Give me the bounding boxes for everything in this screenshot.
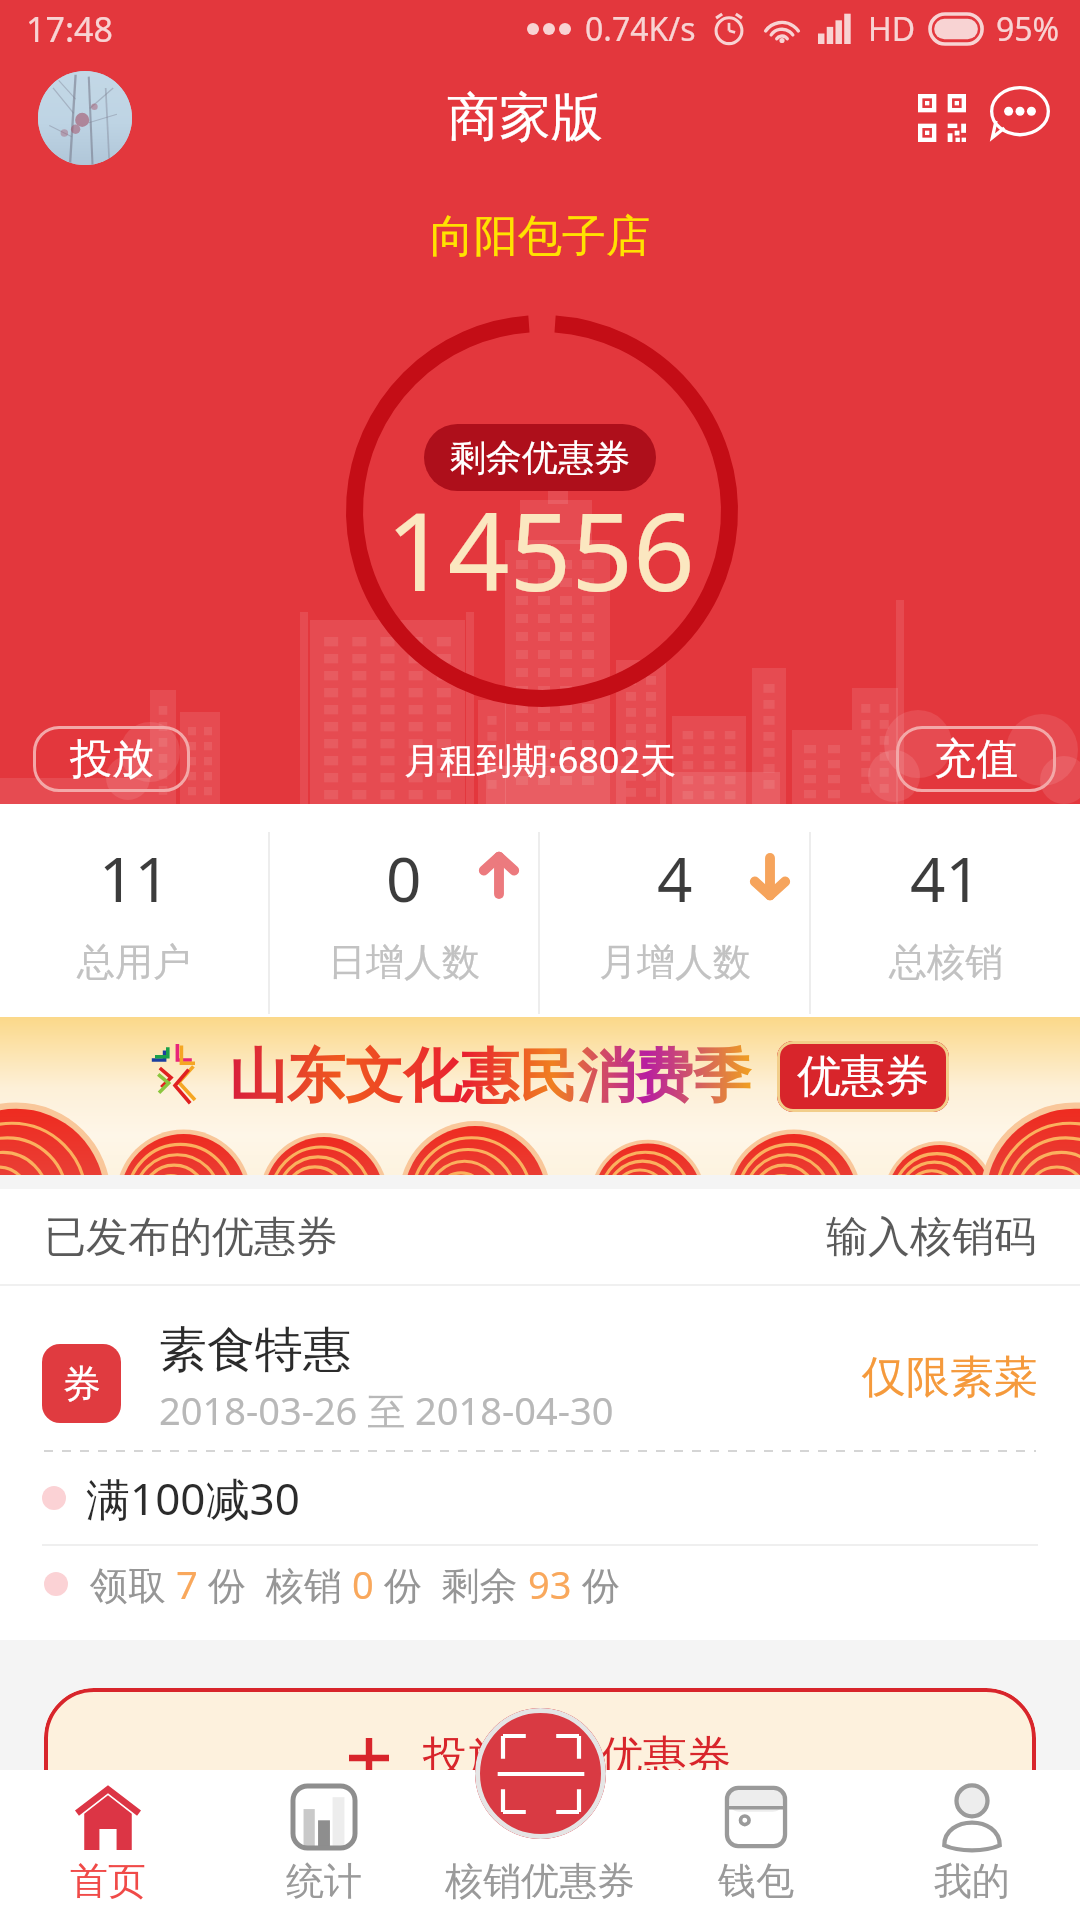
staticText: 已发布的优惠券 <box>44 1211 338 1264</box>
staticText: 投放 <box>70 733 154 786</box>
staticText: 17:48 <box>26 6 113 52</box>
staticText: 4 <box>657 836 693 920</box>
button[interactable]: 投放 <box>33 726 190 792</box>
staticText: 投放新的优惠券 <box>423 1730 731 1785</box>
staticText: HD <box>868 7 916 51</box>
button[interactable]: Home <box>0 1770 216 1920</box>
staticText: 2018-03-26 至 2018-04-30 <box>159 1384 614 1436</box>
staticText: 份 核销 <box>198 1558 352 1610</box>
staticText: 95% <box>996 7 1060 51</box>
button[interactable]: 41 <box>811 804 1080 1017</box>
staticText: 统计 <box>286 1857 362 1905</box>
button[interactable]: 投放新的优惠券 <box>44 1688 1036 1838</box>
button[interactable]: 核销优惠券 <box>432 1770 648 1920</box>
staticText: 充值 <box>934 733 1018 786</box>
staticText: 93 <box>528 1558 572 1610</box>
staticText: 总核销 <box>889 938 1003 986</box>
staticText: 商家版 <box>447 85 603 151</box>
staticText: 11 <box>99 836 170 920</box>
button[interactable]: 4 <box>540 804 809 1017</box>
staticText: 我的 <box>934 1857 1010 1905</box>
staticText: 总用户 <box>77 938 191 986</box>
staticText: 输入核销码 <box>826 1211 1036 1264</box>
button[interactable]: 11 <box>0 804 268 1017</box>
staticText: 钱包 <box>718 1857 794 1905</box>
staticText: 券 <box>63 1360 101 1408</box>
button[interactable]: 券 <box>0 1286 1080 1640</box>
staticText: 14556 <box>386 476 695 623</box>
staticText: 月租到期:6802天 <box>404 735 677 784</box>
staticText: 0.74K/s <box>585 7 696 51</box>
button[interactable]: Statistics <box>216 1770 432 1920</box>
button[interactable]: 0 <box>270 804 538 1017</box>
staticText: 首页 <box>70 1857 146 1905</box>
staticText: 0 <box>386 836 422 920</box>
staticText: 优惠券 <box>797 1049 929 1104</box>
button[interactable]: Profile avatar <box>38 71 132 165</box>
staticText: 41 <box>910 836 981 920</box>
button[interactable]: 山东文化惠民消费季 <box>0 1017 1080 1175</box>
staticText: 月增人数 <box>599 938 751 986</box>
button[interactable]: 充值 <box>896 726 1056 792</box>
staticText: 素食特惠 <box>159 1320 351 1380</box>
staticText: 剩余优惠券 <box>450 435 630 480</box>
staticText: 满100减30 <box>86 1468 300 1528</box>
staticText: 山东文化惠民消费季 <box>229 1040 751 1113</box>
staticText: 向阳包子店 <box>430 209 650 264</box>
staticText: 7 <box>176 1558 198 1610</box>
staticText: 份 剩余 <box>374 1558 528 1610</box>
button[interactable]: Profile <box>864 1770 1080 1920</box>
button[interactable]: Wallet <box>648 1770 864 1920</box>
staticText: 核销优惠券 <box>445 1857 635 1905</box>
staticText: 仅限素菜 <box>862 1350 1038 1405</box>
button[interactable]: Messages <box>990 86 1050 146</box>
staticText: 0 <box>352 1558 374 1610</box>
staticText: 份 <box>572 1558 620 1610</box>
staticText: 领取 <box>90 1558 176 1610</box>
button[interactable]: 输入核销码 <box>826 1189 1036 1286</box>
staticText: 日增人数 <box>328 938 480 986</box>
button[interactable]: QR code <box>918 94 966 142</box>
button[interactable]: Scan to redeem coupon <box>475 1708 606 1839</box>
